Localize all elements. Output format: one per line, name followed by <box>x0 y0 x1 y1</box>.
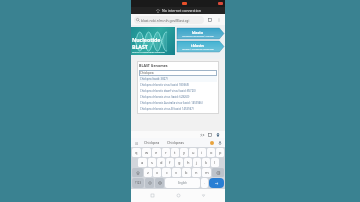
button[interactable]: b <box>182 168 191 177</box>
button[interactable]: Chickpea <box>139 70 217 76</box>
button[interactable]: Recents <box>148 191 157 200</box>
staticText: translated nucleotide > protein <box>182 35 214 38</box>
button[interactable]: w <box>142 148 151 157</box>
button[interactable]: Language <box>155 178 164 188</box>
button[interactable]: Location <box>215 132 221 138</box>
button[interactable]: tblastn <box>177 41 224 52</box>
button[interactable]: v <box>172 168 181 177</box>
button[interactable]: Chickpeas <box>165 140 187 145</box>
staticText: Chickpea chlorosis virus (taxid: 628260) <box>140 95 190 99</box>
button[interactable]: Space <box>165 178 200 188</box>
button[interactable]: Search <box>209 178 224 188</box>
staticText: z <box>147 170 149 175</box>
button[interactable]: z <box>144 168 152 177</box>
staticText: Chickpea <box>144 140 160 145</box>
staticText: h <box>187 160 190 165</box>
button[interactable]: Back <box>199 191 208 200</box>
button[interactable]: Emoji keyboard <box>145 178 154 188</box>
button[interactable]: Voice input <box>217 140 223 146</box>
button[interactable]: c <box>162 168 171 177</box>
button[interactable]: y <box>180 148 188 157</box>
button[interactable]: x <box>153 168 161 177</box>
staticText: y <box>183 150 186 155</box>
button[interactable]: Translate <box>199 132 205 138</box>
button[interactable]: p <box>216 148 224 157</box>
staticText: m <box>205 170 209 175</box>
button[interactable]: e <box>152 148 161 157</box>
button[interactable]: Clipboard <box>207 132 213 138</box>
staticText: No internet connection <box>162 8 201 13</box>
button[interactable]: f <box>166 158 174 167</box>
staticText: Chickpea chlorosis virus-B (taxid: 14539… <box>140 107 194 111</box>
staticText: c <box>166 170 168 175</box>
staticText: b <box>185 170 188 175</box>
button[interactable]: Nucleotide BLAST <box>131 27 175 55</box>
button[interactable]: s <box>148 158 156 167</box>
staticText: t <box>174 150 176 155</box>
button[interactable]: Shift <box>132 168 143 177</box>
button[interactable]: k <box>202 158 210 167</box>
button[interactable]: Period <box>201 178 208 188</box>
button[interactable]: l <box>211 158 219 167</box>
button[interactable]: Home <box>174 191 183 200</box>
staticText: . <box>204 181 205 185</box>
staticText: r <box>165 150 167 155</box>
staticText: u <box>192 150 195 155</box>
staticText: a <box>141 160 144 165</box>
staticText: x <box>156 170 159 175</box>
staticText: Chickpea (taxid: 3827) <box>140 77 168 81</box>
button[interactable]: m <box>202 168 211 177</box>
button[interactable]: Chickpea (taxid: 3827) <box>139 76 217 82</box>
staticText: Chickpea <box>140 71 154 75</box>
staticText: s <box>151 160 153 165</box>
staticText: blast.ncbi.nlm.nih.gov/Blast.cgi <box>141 18 190 22</box>
staticText: p <box>219 150 222 155</box>
button[interactable]: Chickpea <box>142 140 162 145</box>
button[interactable]: More options <box>215 16 222 23</box>
button[interactable]: u <box>189 148 197 157</box>
button[interactable]: blast.ncbi.nlm.nih.gov/Blast.cgi <box>134 16 204 24</box>
staticText: ?123 <box>135 181 142 185</box>
staticText: protein > translated nucleotide <box>182 48 214 51</box>
staticText: o <box>210 150 213 155</box>
button[interactable]: d <box>157 158 165 167</box>
staticText: f <box>169 160 171 165</box>
button[interactable]: Chickpea chlorotic dwarf virus (taxid: 8… <box>139 88 217 94</box>
staticText: q <box>135 150 138 155</box>
button[interactable]: Tabs <box>206 16 213 23</box>
button[interactable]: Chickpea chlorosis virus (taxid: 628260) <box>139 94 217 100</box>
button[interactable]: n <box>192 168 201 177</box>
button[interactable]: j <box>193 158 201 167</box>
staticText: Chickpeas <box>167 140 185 145</box>
button[interactable]: t <box>171 148 179 157</box>
staticText: n <box>195 170 198 175</box>
staticText: 文a <box>200 133 205 137</box>
button[interactable]: h <box>184 158 192 167</box>
button[interactable]: Chickpea chlorosis Australia virus (taxi… <box>139 100 217 106</box>
button[interactable]: i <box>198 148 206 157</box>
button[interactable]: Symbols <box>132 178 144 188</box>
staticText: BLAST Genomes <box>139 63 168 68</box>
staticText: v <box>175 170 178 175</box>
button[interactable]: Chickpea chlorosis virus-B (taxid: 14539… <box>139 106 217 112</box>
button[interactable]: Keyboard settings <box>133 140 139 146</box>
button[interactable]: r <box>162 148 170 157</box>
staticText: Chickpea chlorotic dwarf virus (taxid: 8… <box>140 89 196 93</box>
staticText: Search a nucleotide database <box>132 50 165 53</box>
button[interactable]: q <box>132 148 141 157</box>
staticText: d <box>160 160 163 165</box>
button[interactable]: a <box>138 158 147 167</box>
button[interactable]: blastx <box>177 28 224 39</box>
button[interactable]: g <box>175 158 183 167</box>
button[interactable]: Chickpea chlorotic virus (taxid: 930665) <box>139 82 217 88</box>
staticText: Nucleotide BLAST <box>132 36 175 50</box>
staticText: e <box>155 150 158 155</box>
button[interactable]: Backspace <box>212 168 224 177</box>
staticText: Chickpea chlorotic virus (taxid: 930665) <box>140 83 190 87</box>
staticText: tblastn <box>191 43 204 48</box>
staticText: Chickpea chlorosis Australia virus (taxi… <box>140 101 203 105</box>
button[interactable]: o <box>207 148 215 157</box>
button[interactable]: Emoji <box>209 140 215 146</box>
staticText: English <box>178 181 187 185</box>
staticText: g <box>178 160 181 165</box>
